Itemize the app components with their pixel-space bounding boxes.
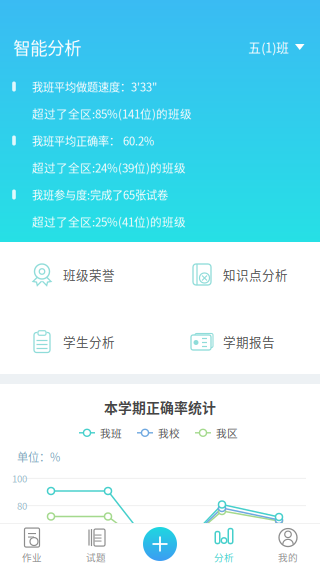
staticText: 分析 xyxy=(214,550,234,564)
button[interactable]: 班级荣誉 xyxy=(30,254,190,294)
staticText: 学生分析 xyxy=(63,332,115,350)
staticText: 试题 xyxy=(86,550,106,564)
button[interactable]: 学生分析 xyxy=(30,321,190,361)
staticText: 我班 xyxy=(100,425,122,440)
staticText: 我的 xyxy=(278,550,298,564)
button[interactable]: 五(1)班 xyxy=(246,32,307,62)
staticText: 作业 xyxy=(22,550,42,564)
staticText: 我区 xyxy=(216,425,238,440)
staticText: 本学期正确率统计 xyxy=(104,397,216,417)
button[interactable]: 作业 xyxy=(0,523,64,567)
staticText: 五(1)班 xyxy=(248,38,289,56)
button[interactable]: 新建 xyxy=(143,527,177,561)
button[interactable]: 分析 xyxy=(192,523,256,567)
staticText: 单位：% xyxy=(17,448,60,465)
staticText: 学期报告 xyxy=(223,332,275,350)
staticText: 超过了全区:85%(141位)的班级 xyxy=(32,105,192,122)
staticText: 我班参与度:完成了65张试卷 xyxy=(32,186,168,203)
button[interactable]: 我的 xyxy=(256,523,320,567)
staticText: 班级荣誉 xyxy=(63,265,115,283)
staticText: 知识点分析 xyxy=(223,265,288,283)
staticText: 80 xyxy=(17,499,27,512)
staticText: 我班平均正确率： 60.2% xyxy=(32,132,154,149)
staticText: 超过了全区:24%(39位)的班级 xyxy=(32,159,186,176)
staticText: 我班平均做题速度：3'33" xyxy=(32,78,157,95)
button[interactable]: 试题 xyxy=(64,523,128,567)
staticText: 智能分析 xyxy=(13,34,81,60)
button[interactable]: 学期报告 xyxy=(190,321,320,361)
button[interactable]: 知识点分析 xyxy=(190,254,320,294)
staticText: 100 xyxy=(12,471,27,485)
staticText: 我校 xyxy=(158,425,180,440)
staticText: 超过了全区:25%(41位)的班级 xyxy=(32,213,186,230)
